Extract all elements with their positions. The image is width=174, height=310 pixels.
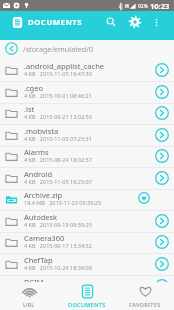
staticText: .android_applist_cache: [24, 61, 105, 71]
staticText: .mobvista: [24, 126, 59, 136]
staticText: DCIM: [24, 277, 44, 287]
staticText: 4 KB 2015-11-05 16:47:39: [24, 70, 92, 77]
button[interactable]: Archive.zip: [0, 189, 174, 211]
staticText: 4 KB 2015-09-19 09:59:25: [24, 221, 92, 228]
button[interactable]: Open folder: [152, 146, 172, 166]
staticText: 4 KB 2015-08-24 18:02:57: [24, 156, 92, 163]
staticText: URL: [23, 301, 35, 309]
staticText: 4 KB 2015-09-17 13:34:52: [24, 242, 92, 249]
staticText: Android: [24, 169, 53, 179]
staticText: 4 KB 2015-11-05 16:25:07: [24, 178, 92, 185]
button[interactable]: ChefTap: [0, 254, 174, 276]
staticText: Camera360: [24, 233, 65, 243]
button[interactable]: Search: [101, 12, 121, 32]
staticText: DOCUMENTS: [68, 301, 106, 309]
staticText: 4 KB 2015-10-24 18:39:09: [24, 264, 92, 271]
staticText: H: [125, 3, 129, 10]
staticText: 18.4 MB 2015-11-23 09:39:25: [24, 199, 102, 206]
staticText: FAVORITES: [129, 301, 161, 309]
staticText: /storage/emulated/0: [23, 44, 94, 54]
button[interactable]: Open folder: [152, 211, 172, 231]
staticText: ChefTap: [24, 255, 53, 265]
button[interactable]: Android: [0, 168, 174, 190]
button[interactable]: /storage/emulated/0: [0, 40, 174, 60]
button[interactable]: Favorite: [135, 189, 152, 206]
staticText: 4 KB 2015-11-05 07:23:31: [24, 135, 92, 142]
button[interactable]: .lst: [0, 103, 174, 125]
button[interactable]: URL: [0, 282, 58, 310]
staticText: Archive.zip: [24, 190, 63, 200]
button[interactable]: Open folder: [152, 82, 172, 102]
staticText: 4 KB 2015-10-01 08:46:21: [24, 92, 92, 99]
staticText: 92%: [138, 3, 148, 10]
button[interactable]: Open folder: [152, 232, 172, 252]
staticText: .cgeo: [24, 83, 43, 93]
button[interactable]: Open folder: [152, 254, 172, 274]
button[interactable]: .mobvista: [0, 125, 174, 147]
staticText: .lst: [24, 104, 35, 114]
staticText: 4 KB 2015-11-02 11:02:12: [24, 286, 92, 293]
button[interactable]: DCIM: [0, 276, 174, 298]
button[interactable]: More options: [147, 13, 165, 31]
button[interactable]: .cgeo: [0, 82, 174, 104]
button[interactable]: Settings: [124, 11, 146, 33]
button[interactable]: Camera360: [0, 232, 174, 254]
button[interactable]: .android_applist_cache: [0, 60, 174, 82]
staticText: 4 KB 2015-09-21 12:02:50: [24, 113, 92, 120]
button[interactable]: DOCUMENTS: [58, 282, 116, 310]
button[interactable]: Open folder: [152, 276, 172, 296]
button[interactable]: Open folder: [152, 168, 172, 188]
button[interactable]: Open folder: [152, 125, 172, 145]
button[interactable]: Autodesk: [0, 211, 174, 233]
button[interactable]: Open folder: [152, 103, 172, 123]
staticText: DOCUMENTS: [28, 17, 83, 28]
button[interactable]: Alarms: [0, 146, 174, 168]
staticText: 10:23: [150, 1, 170, 11]
button[interactable]: FAVORITES: [116, 282, 174, 310]
staticText: Autodesk: [24, 212, 58, 222]
button[interactable]: Open folder: [152, 60, 172, 80]
staticText: Alarms: [24, 147, 49, 157]
